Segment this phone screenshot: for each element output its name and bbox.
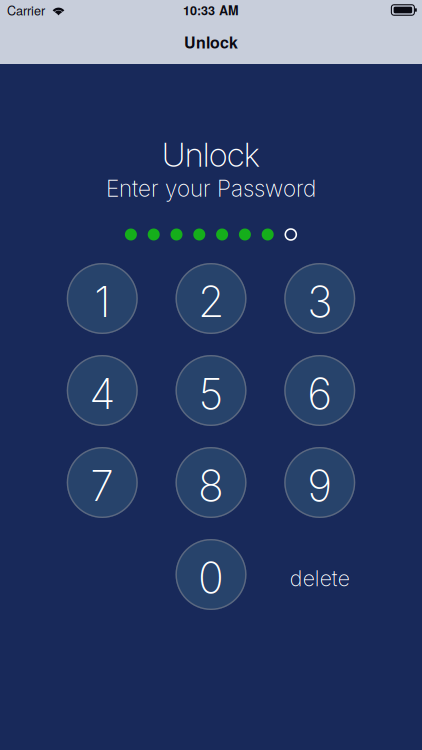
staticText: Unlock [162,134,260,175]
staticText: delete [290,566,350,591]
staticText: 1 [94,276,110,327]
button[interactable]: 5 [175,355,246,426]
staticText: 5 [198,368,223,419]
staticText: Carrier [7,1,45,19]
button[interactable]: 3 [284,263,355,334]
button[interactable]: delete [284,539,355,610]
button[interactable]: 7 [67,447,138,518]
button[interactable]: 6 [284,355,355,426]
staticText: 7 [90,460,114,511]
button[interactable]: 4 [67,355,138,426]
button[interactable]: 0 [175,539,246,610]
staticText: Unlock [184,30,238,53]
staticText: 9 [307,460,332,511]
button[interactable]: 1 [67,263,138,334]
staticText: 2 [198,276,224,327]
staticText: 0 [198,552,224,603]
button[interactable]: 2 [175,263,246,334]
button[interactable]: 8 [175,447,246,518]
button[interactable]: 9 [284,447,355,518]
staticText: 8 [198,460,224,511]
staticText: 3 [307,276,332,327]
staticText: Enter your Password [106,175,316,202]
staticText: 10:33 AM [183,1,239,19]
staticText: 6 [307,368,332,419]
staticText: 4 [89,368,115,419]
